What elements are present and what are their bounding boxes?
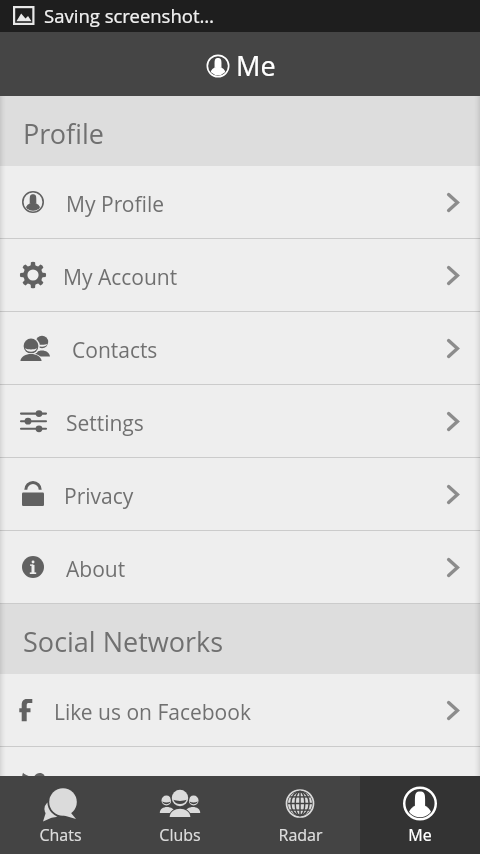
button[interactable]: Privacy bbox=[0, 458, 480, 530]
staticText: Radar bbox=[278, 824, 323, 846]
button[interactable]: About bbox=[0, 531, 480, 603]
button[interactable]: My Account bbox=[0, 239, 480, 311]
staticText: Privacy bbox=[64, 482, 134, 511]
button[interactable] bbox=[0, 747, 480, 776]
button[interactable]: Me bbox=[360, 776, 480, 854]
staticText: Me bbox=[408, 824, 432, 846]
staticText: Settings bbox=[66, 409, 144, 438]
staticText: About bbox=[66, 555, 126, 584]
staticText: Profile bbox=[23, 115, 104, 152]
staticText: Saving screenshot… bbox=[44, 3, 215, 28]
button[interactable]: Radar bbox=[240, 776, 360, 854]
staticText: My Profile bbox=[66, 190, 164, 219]
staticText: My Account bbox=[63, 263, 178, 292]
button[interactable]: Contacts bbox=[0, 312, 480, 384]
staticText: Like us on Facebook bbox=[54, 698, 251, 727]
button[interactable]: Chats bbox=[0, 776, 120, 854]
staticText: Chats bbox=[39, 824, 82, 846]
button[interactable]: Settings bbox=[0, 385, 480, 457]
staticText: Clubs bbox=[159, 824, 201, 846]
staticText: Contacts bbox=[72, 336, 158, 365]
staticText: Me bbox=[236, 47, 276, 84]
button[interactable]: Like us on Facebook bbox=[0, 674, 480, 746]
button[interactable]: Clubs bbox=[120, 776, 240, 854]
staticText: Social Networks bbox=[23, 623, 224, 660]
button[interactable]: My Profile bbox=[0, 166, 480, 238]
